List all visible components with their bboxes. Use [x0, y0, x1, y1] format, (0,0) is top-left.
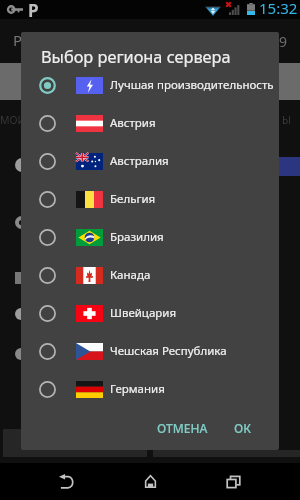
staticText: Ы [282, 113, 291, 127]
button[interactable]: Германия [21, 370, 279, 408]
staticText: Канада [110, 267, 151, 283]
button[interactable]: Австралия [21, 142, 279, 180]
button[interactable]: Recents [209, 463, 257, 500]
staticText: Чешская Республика [110, 343, 227, 359]
staticText: Австралия [110, 153, 169, 169]
staticText: Лучшая производительность [110, 77, 274, 93]
staticText: Бельгия [110, 191, 156, 207]
staticText: 9 [279, 32, 288, 51]
staticText: ОК [234, 420, 251, 436]
staticText: Выбор региона сервера [41, 46, 231, 68]
staticText: МОИ [0, 113, 26, 127]
staticText: P [13, 30, 23, 50]
staticText: Австрия [110, 115, 156, 131]
button[interactable]: Канада [21, 256, 279, 294]
button[interactable]: Бельгия [21, 180, 279, 218]
button[interactable]: ОК [226, 412, 259, 444]
button[interactable]: Лучшая производительность [21, 66, 279, 104]
staticText: ОТМЕНА [157, 420, 208, 436]
button[interactable]: ОТМЕНА [149, 412, 216, 444]
staticText: Швейцария [110, 305, 177, 321]
button[interactable]: Back [42, 463, 90, 500]
staticText: Бразилия [110, 229, 164, 245]
button[interactable]: Австрия [21, 104, 279, 142]
staticText: P [28, 0, 39, 18]
staticText: 15:32 [259, 0, 298, 17]
button[interactable]: Бразилия [21, 218, 279, 256]
button[interactable]: Чешская Республика [21, 332, 279, 370]
button[interactable]: Швейцария [21, 294, 279, 332]
staticText: Германия [110, 381, 165, 397]
button[interactable]: Home [126, 463, 174, 500]
